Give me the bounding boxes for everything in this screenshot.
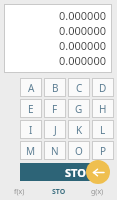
staticText: I <box>29 123 33 137</box>
staticText: 0.000000 <box>59 23 106 38</box>
staticText: g(x) <box>91 187 104 197</box>
staticText: O <box>75 144 83 158</box>
staticText: J <box>54 123 57 137</box>
staticText: 0.000000 <box>59 53 106 68</box>
staticText: STO <box>65 165 86 180</box>
staticText: B <box>52 81 59 95</box>
button[interactable]: J <box>44 120 66 139</box>
button[interactable]: C <box>68 78 90 97</box>
button[interactable]: Backspace <box>86 160 110 184</box>
button[interactable]: L <box>92 120 114 139</box>
staticText: F <box>52 102 58 116</box>
staticText: E <box>28 102 34 116</box>
staticText: C <box>76 81 83 95</box>
button[interactable]: G <box>68 99 90 118</box>
button[interactable]: K <box>68 120 90 139</box>
staticText: H <box>99 102 107 116</box>
button[interactable]: B <box>44 78 66 97</box>
button[interactable]: H <box>92 99 114 118</box>
button[interactable]: M <box>20 141 42 160</box>
staticText: L <box>100 123 106 137</box>
button[interactable]: P <box>92 141 114 160</box>
staticText: N <box>51 144 59 158</box>
staticText: A <box>28 81 35 95</box>
button[interactable]: N <box>44 141 66 160</box>
staticText: f(x) <box>14 187 25 197</box>
staticText: K <box>76 123 83 137</box>
button[interactable]: E <box>20 99 42 118</box>
staticText: P <box>100 144 107 158</box>
button[interactable]: D <box>92 78 114 97</box>
staticText: G <box>75 102 83 116</box>
staticText: 0.000000 <box>59 38 106 53</box>
staticText: 0.000000 <box>59 8 106 23</box>
button[interactable]: A <box>20 78 42 97</box>
staticText: STO <box>52 187 66 197</box>
button[interactable]: 0.000000 <box>4 4 112 73</box>
button[interactable]: g(x) <box>78 183 117 200</box>
button[interactable]: O <box>68 141 90 160</box>
button[interactable]: I <box>20 120 42 139</box>
staticText: D <box>99 81 107 95</box>
button[interactable]: STO <box>20 163 90 181</box>
button[interactable]: f(x) <box>0 183 39 200</box>
button[interactable]: F <box>44 99 66 118</box>
staticText: M <box>26 144 36 158</box>
button[interactable]: STO <box>39 183 78 200</box>
